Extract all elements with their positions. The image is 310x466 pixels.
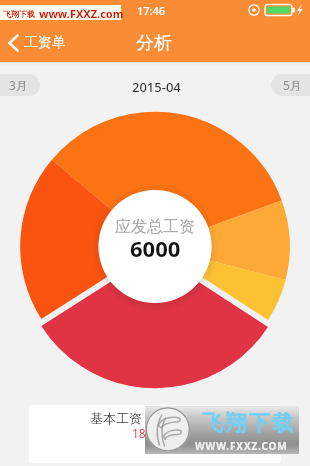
staticText: 基本工资 3500 [90, 409, 176, 427]
button[interactable]: 3月 [0, 74, 40, 96]
staticText: 3月 [9, 77, 28, 93]
staticText: 2015-04 [132, 78, 181, 96]
staticText: WWW.FXXZ.COM [195, 439, 288, 453]
staticText: 6000 [130, 233, 181, 263]
staticText: www.FXXZ.com [39, 6, 124, 21]
staticText: 工资单 [24, 34, 66, 52]
staticText: 5月 [283, 77, 302, 93]
button[interactable]: 返回 工资单 [4, 31, 70, 55]
staticText: 飞翔下载 [3, 9, 35, 19]
button[interactable]: 5月 [271, 74, 310, 96]
staticText: 18% [132, 425, 156, 441]
staticText: 分析 [136, 32, 172, 55]
button[interactable]: 基本工资 3500 [29, 405, 281, 463]
staticText: 应发总工资 [115, 217, 195, 237]
staticText: 飞翔下载 [202, 410, 296, 436]
staticText: 17:46 [137, 3, 166, 18]
